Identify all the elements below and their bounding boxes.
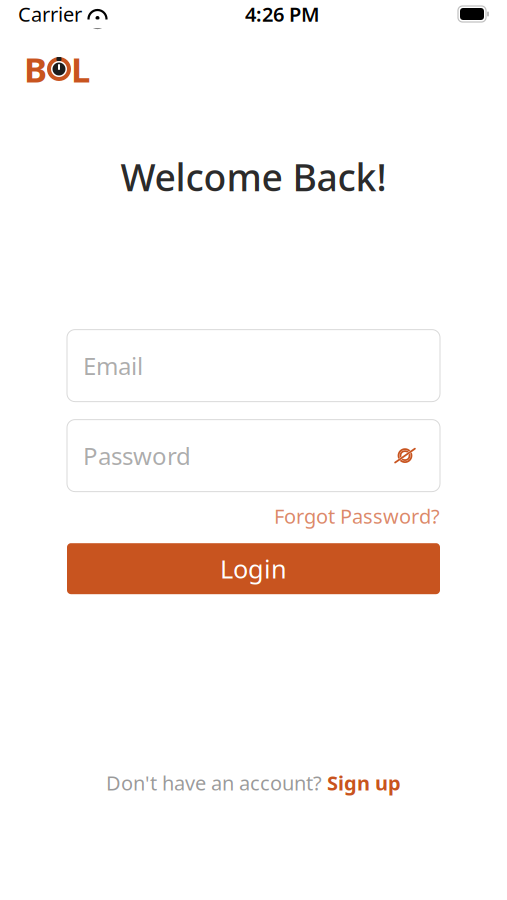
staticText: Login xyxy=(220,552,287,585)
staticText: 4:26 PM xyxy=(245,1,320,27)
staticText: Email xyxy=(83,350,143,382)
staticText: B xyxy=(24,46,47,92)
button[interactable]: Show password xyxy=(386,439,424,473)
button[interactable]: Forgot Password? xyxy=(274,503,440,529)
button[interactable]: Don't have an account? xyxy=(106,769,401,796)
staticText: Don't have an account? xyxy=(106,769,322,796)
staticText: Forgot Password? xyxy=(274,503,440,529)
staticText: Carrier xyxy=(18,1,82,27)
button[interactable]: Login xyxy=(67,543,440,594)
button[interactable]: Password xyxy=(67,420,440,492)
staticText: Sign up xyxy=(327,769,401,796)
staticText: Password xyxy=(83,440,191,472)
button[interactable]: Email xyxy=(67,330,440,402)
staticText: L xyxy=(71,46,90,92)
staticText: Welcome Back! xyxy=(120,152,386,202)
